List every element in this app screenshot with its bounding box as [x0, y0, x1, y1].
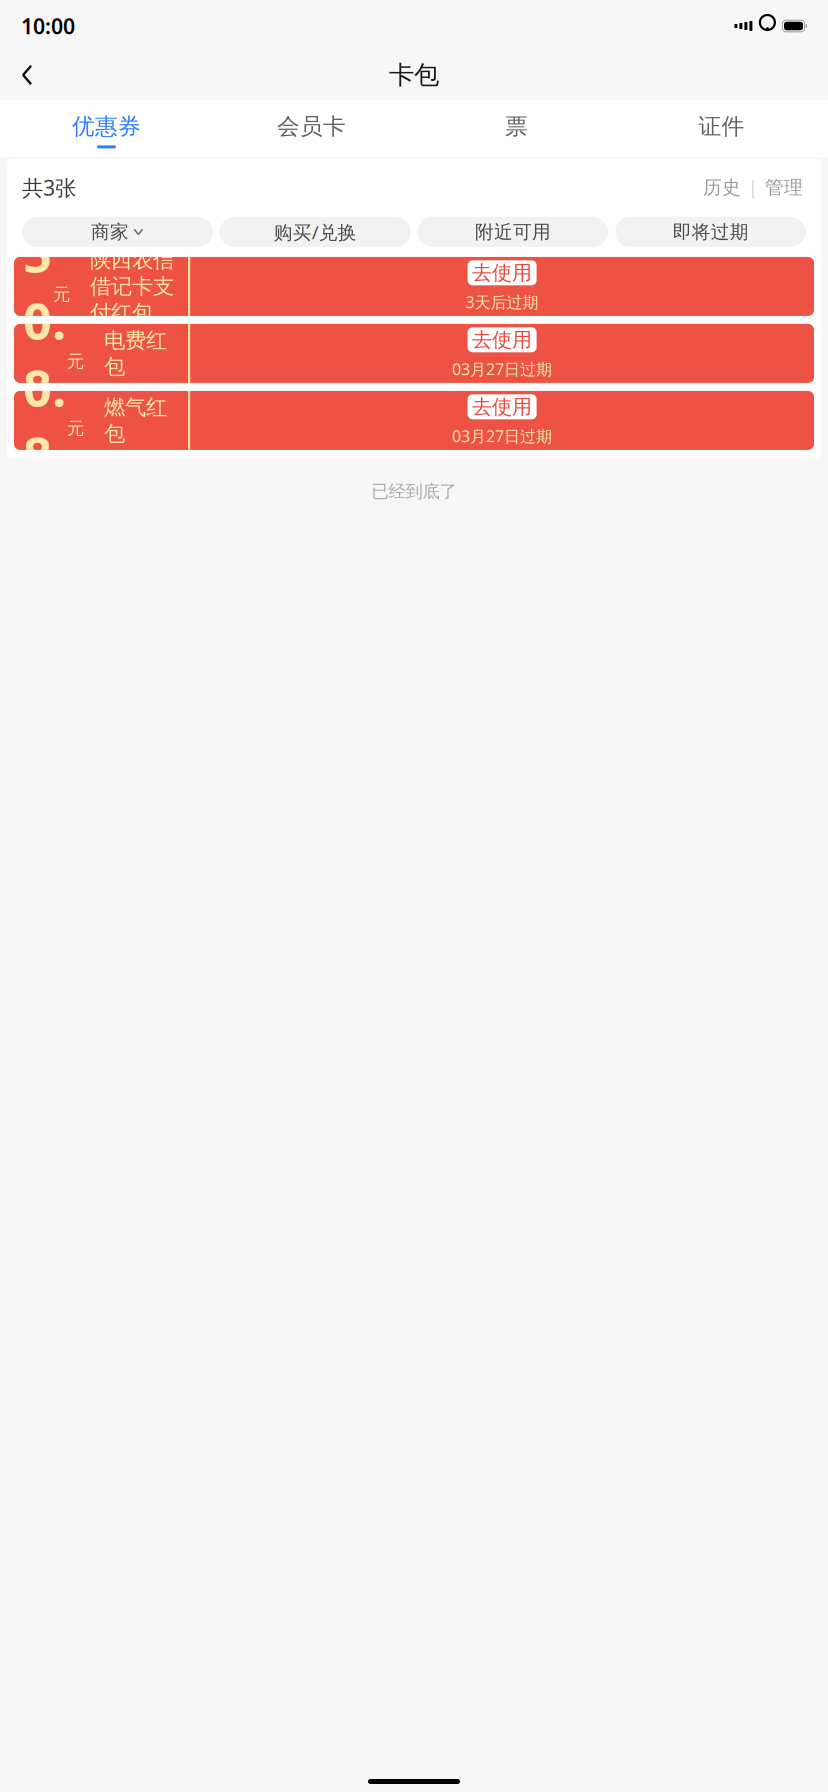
button[interactable]: 票	[414, 102, 619, 155]
button[interactable]: 50	[14, 257, 814, 316]
staticText: 附近可用	[475, 220, 551, 243]
staticText: 0.8	[23, 353, 66, 488]
staticText: 共3张	[22, 173, 76, 202]
button[interactable]: 附近可用	[417, 217, 608, 247]
staticText: 03月27日过期	[452, 358, 552, 379]
staticText: 陕西农信借记卡支付红包	[90, 247, 174, 326]
button[interactable]: 历史	[700, 172, 744, 203]
button[interactable]: 会员卡	[209, 102, 414, 155]
staticText: 卡包	[389, 59, 439, 90]
button[interactable]: 证件	[619, 102, 824, 155]
staticText: 去使用	[472, 394, 532, 419]
staticText: 商家	[91, 220, 129, 243]
button[interactable]: 0.8	[14, 324, 814, 383]
staticText: 电费红包	[104, 327, 167, 380]
staticText: 即将过期	[673, 220, 749, 243]
staticText: 0.8	[23, 286, 66, 421]
staticText: 优惠券	[72, 113, 141, 140]
button[interactable]: 购买/兑换	[220, 217, 411, 247]
staticText: 票	[505, 113, 528, 140]
staticText: 03月27日过期	[452, 425, 552, 446]
staticText: 去使用	[472, 260, 532, 285]
staticText: 元	[67, 351, 84, 372]
staticText: 去使用	[472, 327, 532, 352]
button[interactable]: 0.8	[14, 391, 814, 450]
staticText: 证件	[698, 113, 744, 140]
staticText: 管理	[765, 176, 803, 199]
staticText: 购买/兑换	[274, 219, 357, 244]
staticText: 历史	[703, 176, 741, 199]
button[interactable]: 即将过期	[615, 217, 806, 247]
staticText: 元	[67, 418, 84, 439]
staticText: 元	[53, 284, 70, 305]
button[interactable]: 商家	[22, 217, 213, 247]
button[interactable]: 管理	[762, 172, 806, 203]
staticText: 会员卡	[277, 113, 346, 140]
button[interactable]: 优惠券	[4, 102, 209, 155]
staticText: 3天后过期	[466, 291, 539, 312]
staticText: 燃气红包	[104, 394, 167, 447]
staticText: 已经到底了	[371, 481, 456, 502]
staticText: 10:00	[21, 12, 75, 40]
button[interactable]: 返回	[6, 54, 48, 96]
staticText: 50	[23, 219, 52, 354]
staticText: |	[748, 176, 758, 199]
